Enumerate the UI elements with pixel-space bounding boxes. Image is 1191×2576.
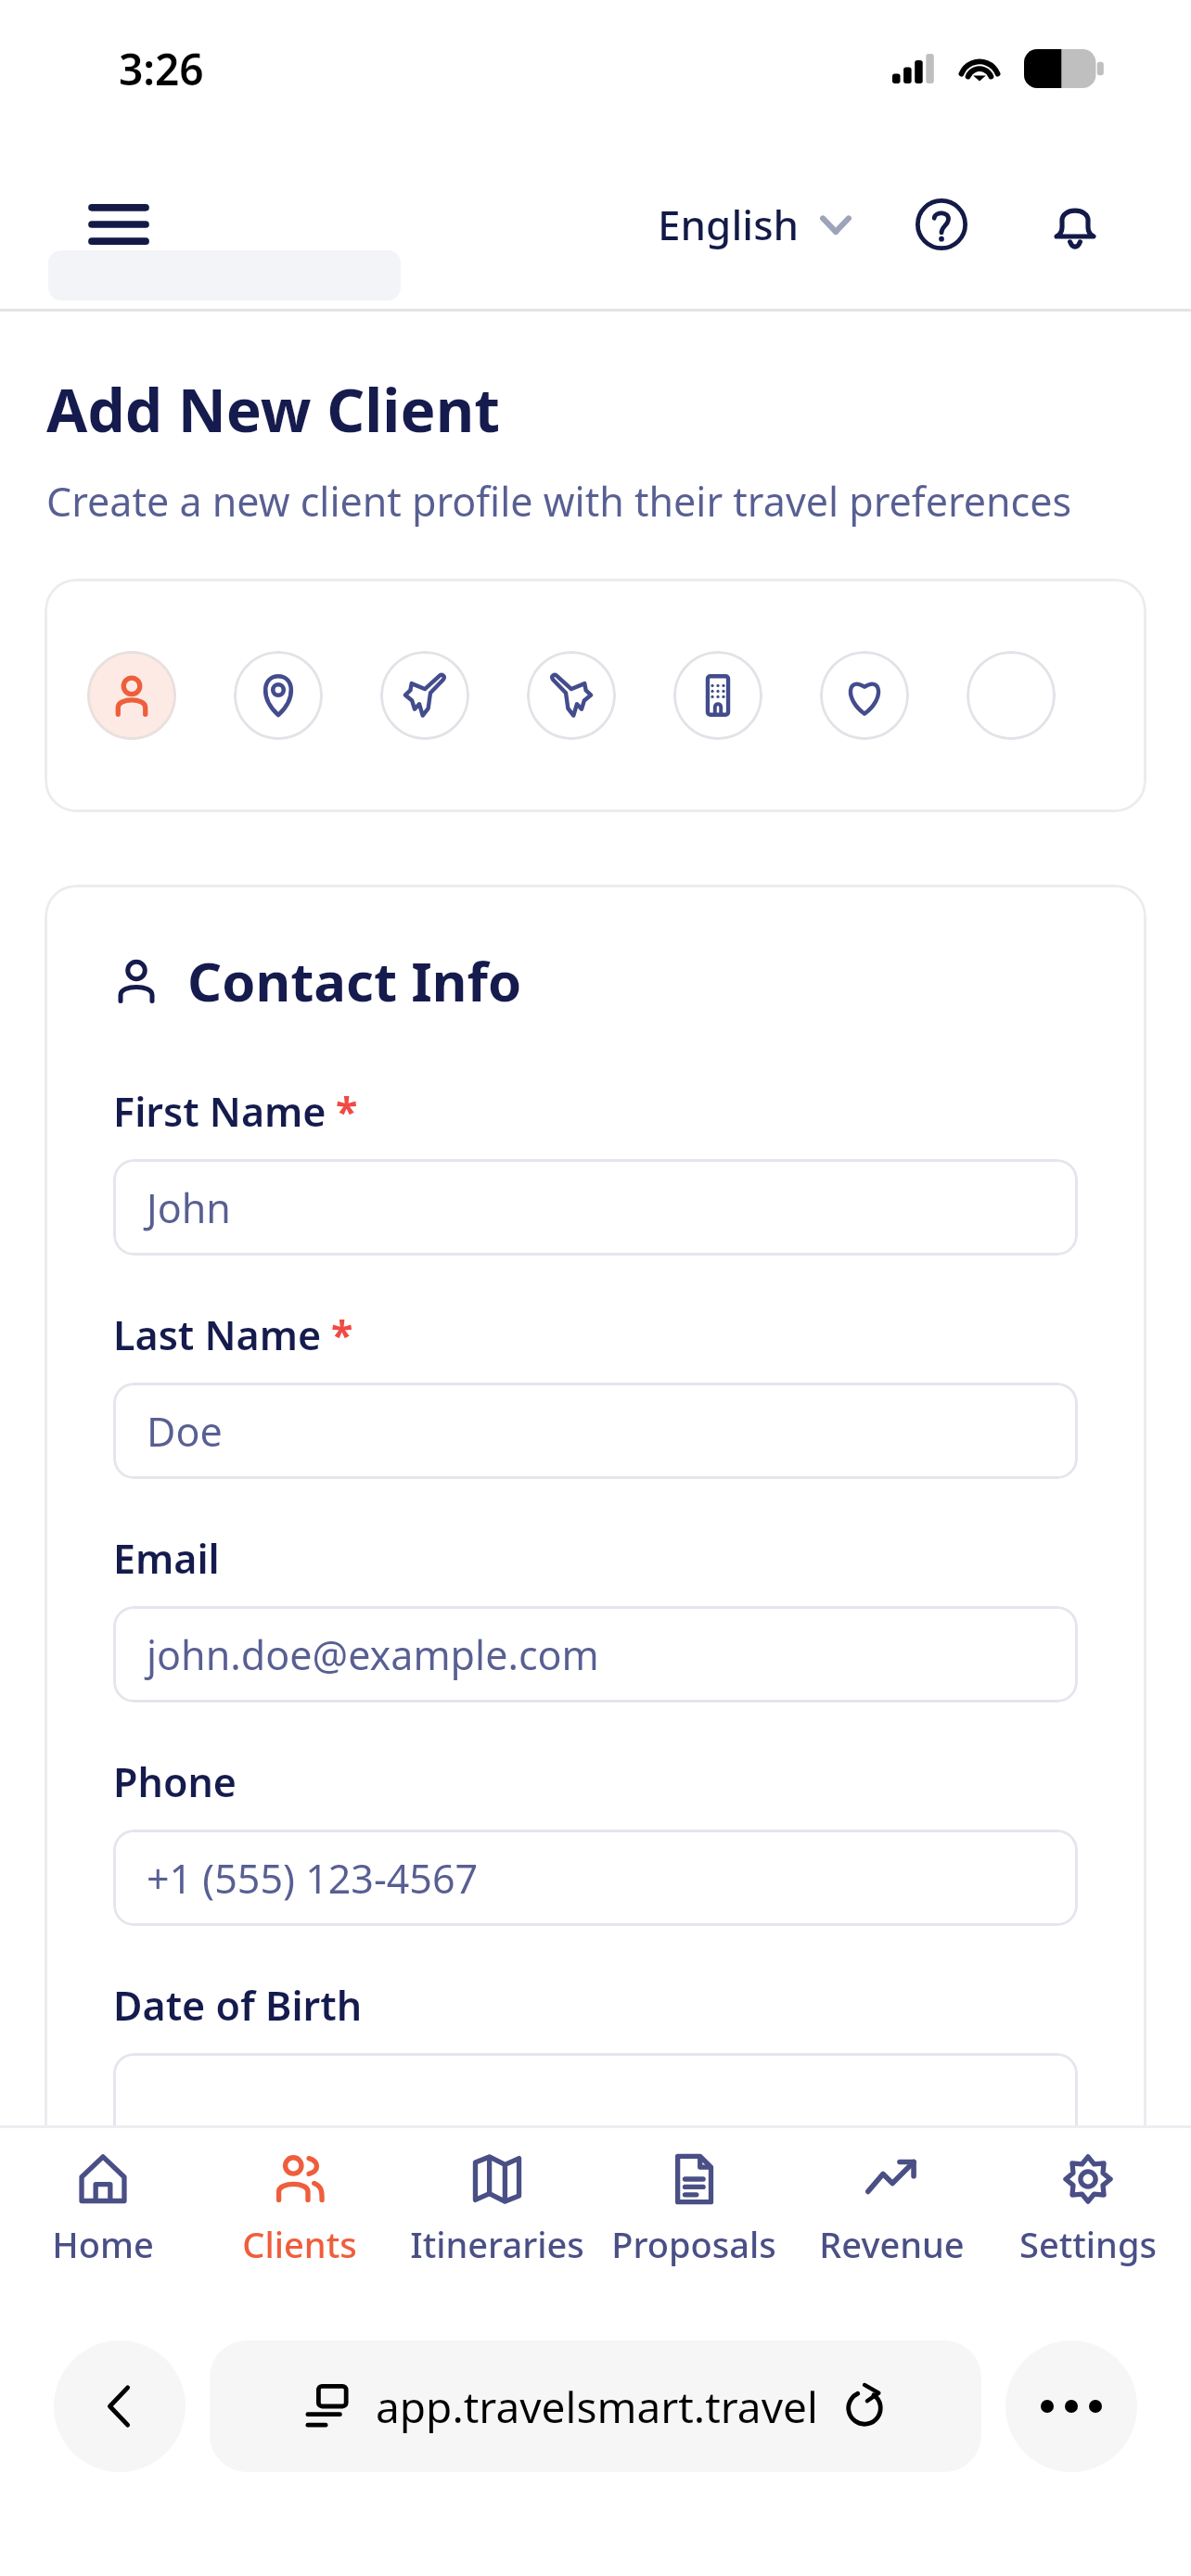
button[interactable]: [113, 2053, 1078, 2149]
button[interactable]: Home: [8, 2148, 198, 2274]
button[interactable]: John: [113, 1159, 1078, 1256]
staticText: Doe: [147, 1404, 223, 1459]
staticText: app.travelsmart.travel: [376, 2378, 818, 2436]
staticText: Clients: [242, 2220, 357, 2268]
button[interactable]: Proposals: [599, 2148, 788, 2274]
button[interactable]: Clients: [205, 2148, 394, 2274]
button[interactable]: app.travelsmart.travel: [210, 2340, 981, 2472]
staticText: john.doe@example.com: [147, 1627, 599, 1682]
staticText: Itineraries: [410, 2220, 584, 2268]
staticText: Phone: [113, 1754, 237, 1809]
button[interactable]: Help: [903, 186, 980, 262]
button[interactable]: Menu: [78, 184, 160, 265]
button[interactable]: Personal details: [87, 651, 176, 740]
staticText: Create a new client profile with their t…: [46, 474, 1072, 529]
button[interactable]: Return flight: [527, 651, 616, 740]
staticText: *: [336, 1084, 358, 1139]
staticText: Revenue: [819, 2220, 965, 2268]
staticText: Add New Client: [46, 369, 501, 450]
button[interactable]: More: [1005, 2340, 1137, 2472]
staticText: +1 (555) 123-4567: [147, 1851, 479, 1906]
staticText: First Name: [113, 1084, 327, 1139]
button[interactable]: john.doe@example.com: [113, 1606, 1078, 1702]
button[interactable]: +1 (555) 123-4567: [113, 1830, 1078, 1926]
button[interactable]: Destination: [234, 651, 323, 740]
staticText: Contact Info: [187, 944, 522, 1017]
button[interactable]: Revenue: [797, 2148, 986, 2274]
button[interactable]: Notifications: [1037, 186, 1113, 262]
staticText: 3:26: [119, 40, 204, 98]
button[interactable]: Itineraries: [403, 2148, 592, 2274]
button[interactable]: English: [647, 180, 863, 269]
staticText: Email: [113, 1531, 220, 1586]
staticText: John: [147, 1180, 231, 1235]
staticText: Settings: [1019, 2220, 1157, 2268]
staticText: English: [658, 197, 800, 252]
staticText: Home: [52, 2220, 154, 2268]
staticText: Proposals: [611, 2220, 776, 2268]
staticText: *: [331, 1307, 353, 1362]
button[interactable]: Departure flight: [380, 651, 469, 740]
button[interactable]: Settings: [993, 2148, 1183, 2274]
button[interactable]: More options: [967, 651, 1056, 740]
staticText: Last Name: [113, 1307, 322, 1362]
button[interactable]: Hotel: [673, 651, 762, 740]
button[interactable]: Preferences: [820, 651, 909, 740]
staticText: Date of Birth: [113, 1978, 363, 2033]
button[interactable]: Back: [54, 2340, 186, 2472]
button[interactable]: Doe: [113, 1383, 1078, 1479]
